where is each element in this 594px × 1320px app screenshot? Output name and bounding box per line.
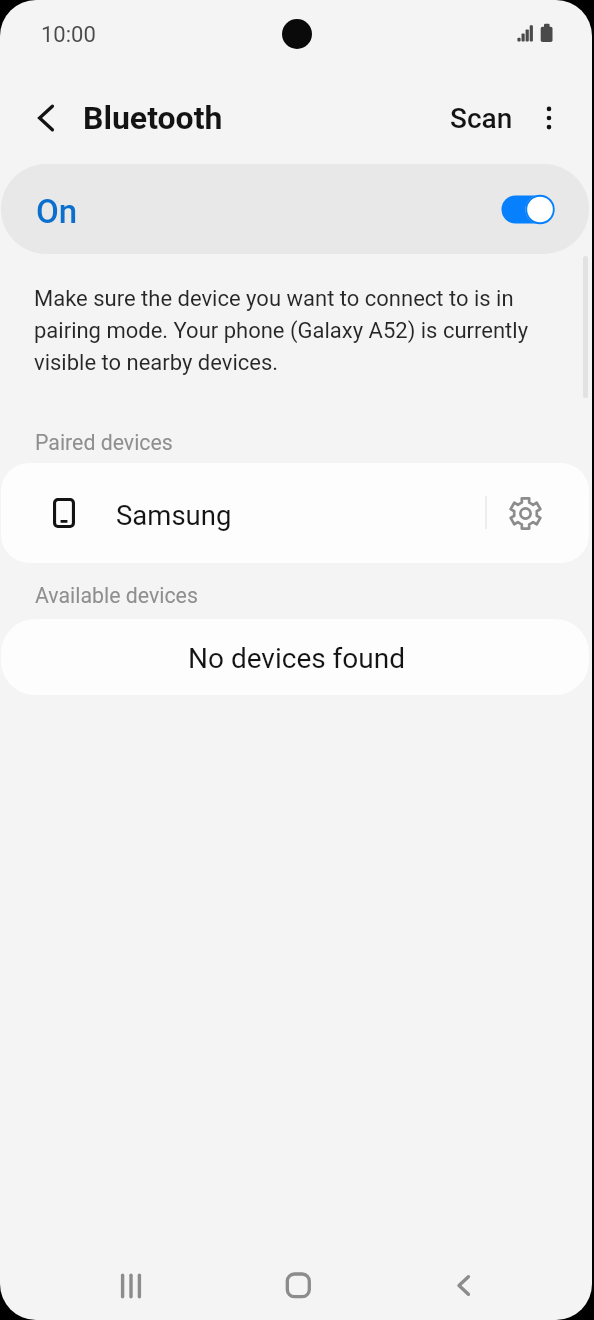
staticText: Paired devices	[35, 430, 173, 455]
staticText: Samsung	[116, 499, 232, 531]
button[interactable]: Recent apps	[108, 1263, 154, 1309]
staticText: 10:00	[41, 22, 96, 48]
button[interactable]: Scan	[435, 95, 528, 141]
button[interactable]: No devices found	[1, 619, 589, 695]
button[interactable]: More options	[526, 95, 572, 141]
staticText: On	[36, 192, 78, 231]
button[interactable]: Bluetooth toggle	[493, 183, 563, 235]
button[interactable]: On	[1, 164, 589, 254]
button[interactable]: Navigate up	[23, 95, 69, 141]
staticText: Available devices	[35, 583, 198, 608]
staticText: Make sure the device you want to connect…	[34, 286, 544, 376]
button[interactable]: Back	[440, 1263, 486, 1309]
staticText: No devices found	[188, 642, 406, 675]
staticText: Bluetooth	[83, 99, 223, 137]
button[interactable]: Samsung	[1, 463, 589, 563]
button[interactable]: Home	[274, 1262, 320, 1308]
button[interactable]: Device settings	[503, 491, 548, 536]
staticText: Scan	[450, 102, 513, 135]
